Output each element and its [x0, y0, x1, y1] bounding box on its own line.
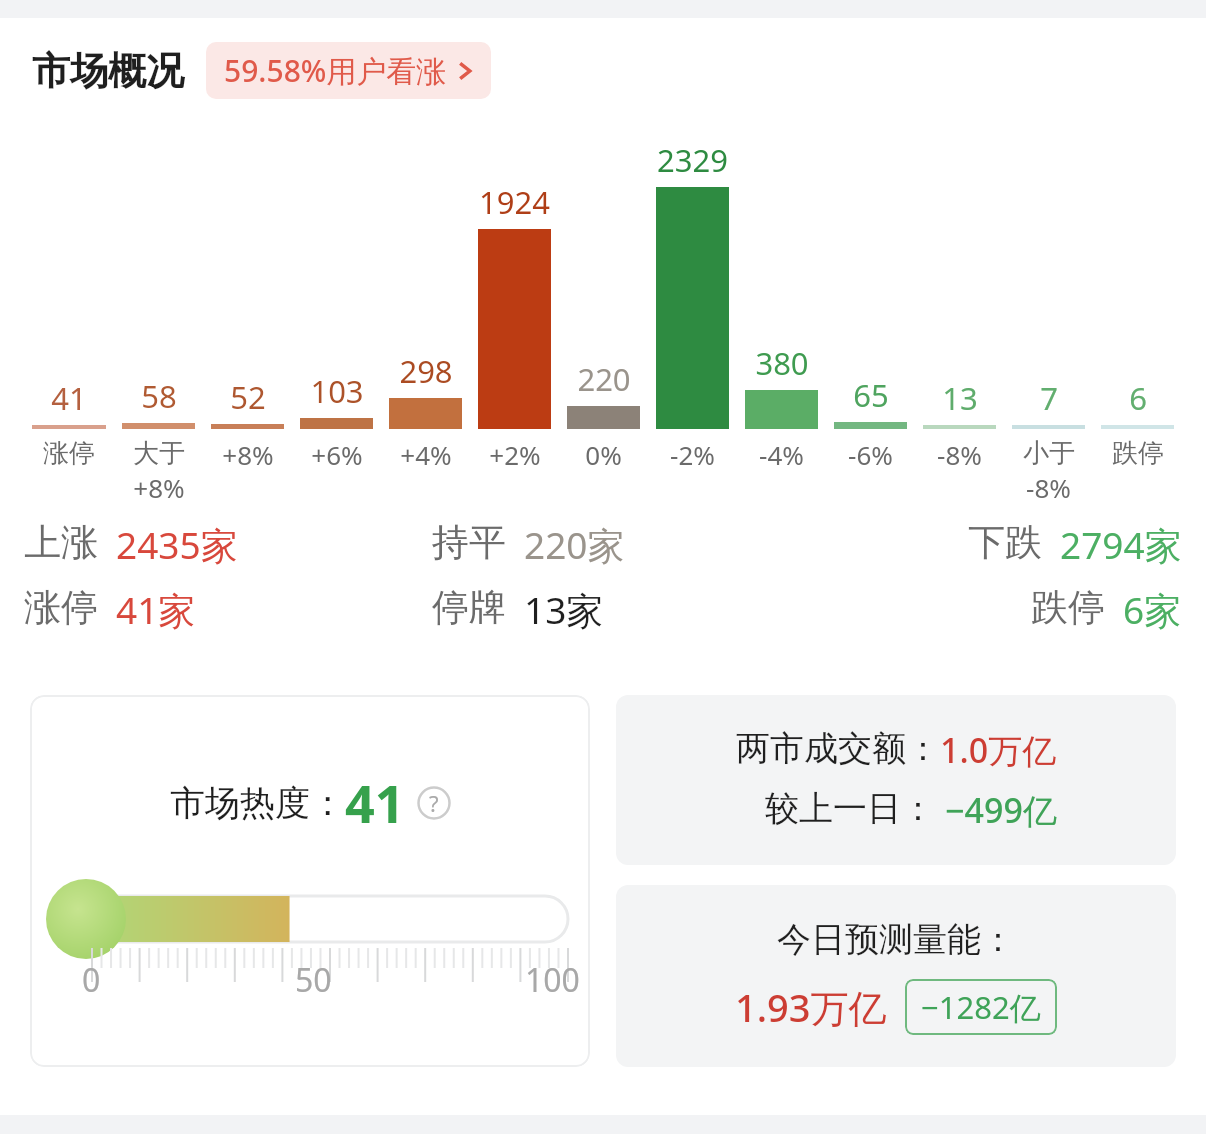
staticText: 小于	[1023, 437, 1075, 470]
staticText: 1.93万亿	[735, 981, 887, 1033]
staticText: 100	[525, 958, 580, 1002]
staticText: +4%	[400, 437, 452, 472]
staticText: 41	[345, 767, 405, 838]
staticText: 103	[310, 370, 364, 412]
staticText: 6家	[1123, 584, 1182, 635]
button[interactable]: 59.58%用户看涨	[206, 42, 491, 99]
staticText: 市场概况	[32, 47, 184, 95]
button[interactable]: 帮助	[417, 786, 451, 820]
staticText: -8%	[1026, 470, 1071, 505]
staticText: 两市成交额：	[736, 727, 940, 770]
staticText: 0	[82, 958, 101, 1002]
staticText: +8%	[133, 470, 185, 505]
staticText: 50	[295, 958, 332, 1002]
staticText: 7	[1040, 377, 1058, 419]
staticText: 41家	[116, 584, 196, 635]
staticText: −499亿	[945, 787, 1057, 833]
staticText: 2329	[657, 139, 728, 181]
staticText: +6%	[311, 437, 363, 472]
staticText: 跌停	[1031, 584, 1105, 631]
staticText: -8%	[937, 437, 982, 472]
staticText: 2794家	[1060, 519, 1182, 570]
staticText: 6	[1129, 377, 1147, 419]
staticText: 停牌	[432, 584, 506, 631]
staticText: 220	[577, 358, 631, 400]
staticText: 1.0万亿	[940, 727, 1057, 773]
staticText: 58	[141, 375, 177, 417]
staticText: +2%	[489, 437, 541, 472]
staticText: 298	[399, 350, 453, 392]
staticText: 52	[230, 376, 266, 418]
staticText: 市场热度：	[170, 781, 345, 825]
staticText: 跌停	[1112, 437, 1164, 470]
staticText: 65	[853, 374, 889, 416]
staticText: ?	[429, 788, 439, 818]
staticText: −1282亿	[921, 986, 1041, 1028]
button[interactable]: 两市成交额：	[616, 695, 1176, 865]
staticText: 13	[942, 377, 978, 419]
staticText: 220家	[524, 519, 625, 570]
staticText: 持平	[432, 519, 506, 566]
staticText: +8%	[222, 437, 274, 472]
staticText: 59.58%用户看涨	[224, 50, 447, 91]
staticText: 380	[755, 342, 809, 384]
staticText: -2%	[670, 437, 715, 472]
staticText: 今日预测量能：	[777, 918, 1015, 961]
staticText: 涨停	[43, 437, 95, 470]
staticText: -6%	[848, 437, 893, 472]
staticText: -4%	[759, 437, 804, 472]
staticText: 涨停	[24, 584, 98, 631]
staticText: 41	[51, 377, 87, 419]
staticText: 1924	[479, 181, 550, 223]
staticText: 上涨	[24, 519, 98, 566]
staticText: 较上一日：	[765, 787, 935, 830]
staticText: 大于	[133, 437, 185, 470]
button[interactable]: 今日预测量能：	[616, 885, 1176, 1067]
staticText: 2435家	[116, 519, 238, 570]
staticText: 0%	[585, 437, 622, 472]
staticText: 下跌	[968, 519, 1042, 566]
staticText: 13家	[524, 584, 604, 635]
button[interactable]: 市场热度：	[30, 695, 590, 1067]
